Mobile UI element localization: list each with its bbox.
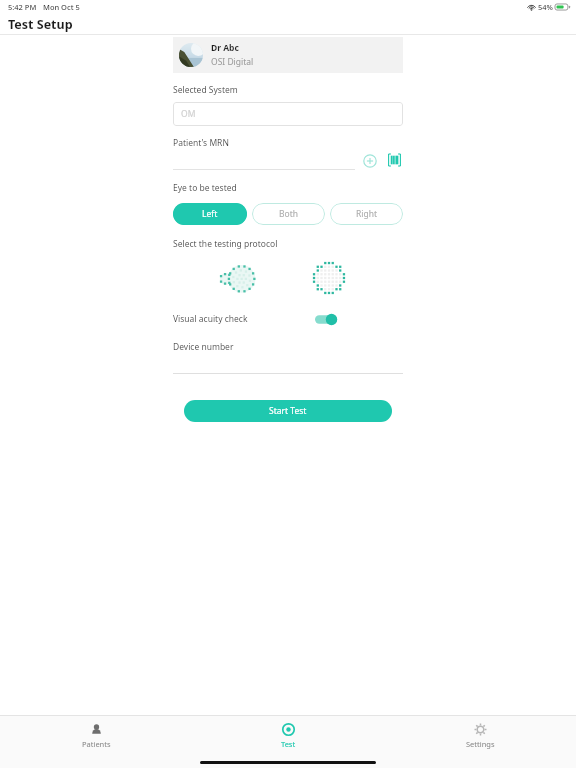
button[interactable]: Patients	[0, 716, 192, 756]
staticText: Dr Abc	[211, 42, 239, 54]
staticText: Both	[279, 208, 298, 220]
button[interactable]: OM	[173, 102, 403, 126]
button[interactable]: Dr Abc	[173, 37, 403, 73]
staticText: Settings	[466, 739, 495, 749]
button[interactable]: Scan barcode	[385, 151, 403, 169]
staticText: Selected System	[173, 84, 238, 96]
button[interactable]: Left	[173, 203, 247, 225]
button[interactable]: Test	[192, 716, 384, 756]
staticText: Left	[202, 208, 218, 220]
staticText: Mon Oct 5	[43, 2, 80, 12]
button[interactable]: Both	[252, 203, 325, 225]
staticText: Test	[281, 739, 296, 749]
staticText: Device number	[173, 341, 234, 353]
button[interactable]: Right	[330, 203, 403, 225]
button[interactable]: Start Test	[184, 400, 392, 422]
staticText: 54%	[538, 2, 553, 12]
button[interactable]: Protocol 24-2 grid pattern	[305, 254, 353, 302]
button[interactable]: Visual acuity check toggle	[315, 314, 337, 325]
staticText: OSI Digital	[211, 56, 254, 68]
staticText: Patient's MRN	[173, 137, 229, 149]
staticText: Right	[356, 208, 378, 220]
button[interactable]: Protocol 30-2 pattern	[215, 254, 263, 302]
staticText: Eye to be tested	[173, 182, 237, 194]
staticText: Start Test	[269, 405, 307, 417]
staticText: Patients	[82, 739, 111, 749]
staticText: Select the testing protocol	[173, 238, 278, 250]
staticText: Test Setup	[8, 16, 73, 33]
staticText: OM	[181, 108, 196, 120]
button[interactable]: Add patient	[361, 152, 379, 170]
staticText: Visual acuity check	[173, 313, 248, 325]
staticText: 5:42 PM	[8, 2, 37, 12]
button[interactable]: Settings	[384, 716, 576, 756]
